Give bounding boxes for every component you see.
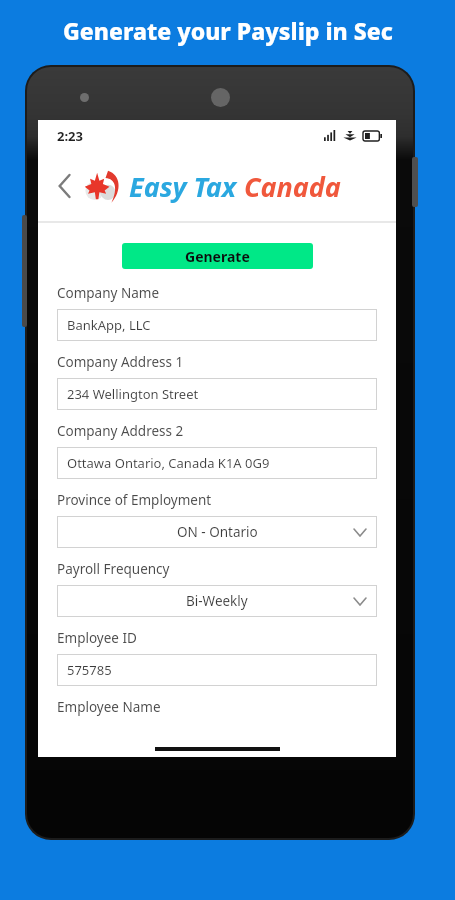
staticText: 234 Wellington Street: [67, 385, 199, 403]
staticText: Canada: [244, 168, 341, 205]
staticText: BankApp, LLC: [67, 316, 151, 334]
staticText: 2:23: [57, 127, 83, 145]
button[interactable]: Back: [48, 169, 82, 203]
staticText: Payroll Frequency: [57, 560, 170, 578]
button[interactable]: BankApp, LLC: [57, 309, 377, 341]
staticText: Generate your Payslip in Sec: [63, 15, 393, 46]
button[interactable]: 575785: [57, 654, 377, 686]
staticText: 575785: [67, 661, 112, 679]
staticText: Bi-Weekly: [186, 592, 248, 610]
button[interactable]: ON - Ontario: [57, 516, 377, 548]
staticText: Employee Name: [57, 698, 161, 716]
button[interactable]: Ottawa Ontario, Canada K1A 0G9: [57, 447, 377, 479]
staticText: Company Name: [57, 284, 160, 302]
button[interactable]: 234 Wellington Street: [57, 378, 377, 410]
staticText: ON - Ontario: [177, 523, 258, 541]
staticText: Company Address 1: [57, 353, 184, 371]
staticText: Company Address 2: [57, 422, 184, 440]
staticText: Ottawa Ontario, Canada K1A 0G9: [67, 454, 270, 472]
staticText: Generate: [185, 247, 250, 266]
staticText: Easy Tax: [129, 168, 244, 205]
staticText: Province of Employment: [57, 491, 212, 509]
button[interactable]: Bi-Weekly: [57, 585, 377, 617]
button[interactable]: Generate: [122, 243, 313, 269]
staticText: Employee ID: [57, 629, 137, 647]
